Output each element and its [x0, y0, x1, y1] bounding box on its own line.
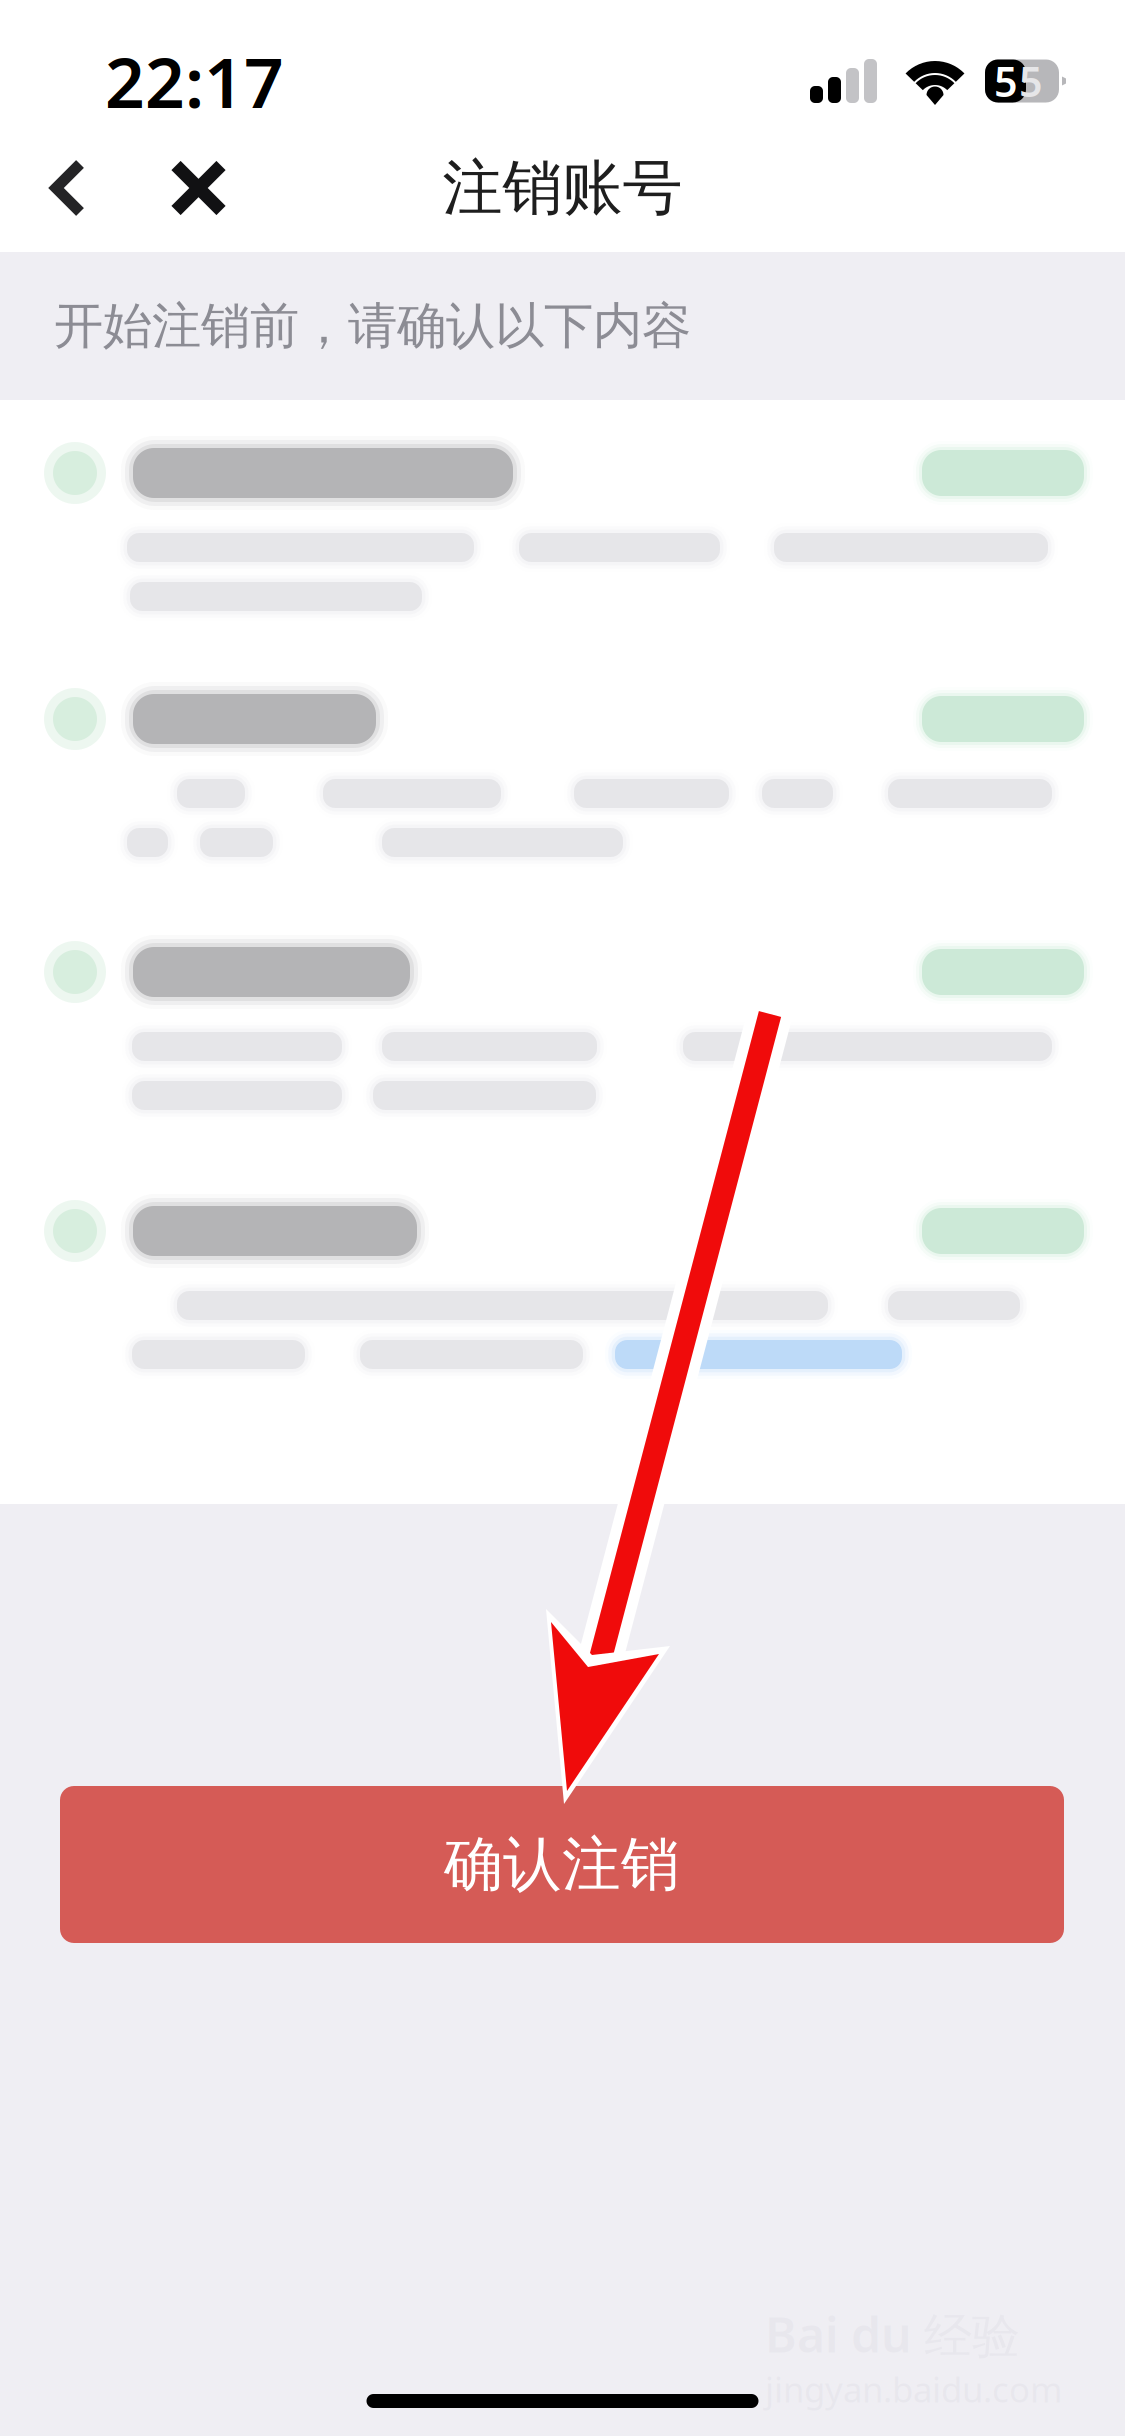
- button[interactable]: Back: [0, 136, 142, 240]
- staticText: 5: [1019, 54, 1043, 108]
- staticText: 5: [994, 54, 1018, 108]
- staticText: 确认注销: [444, 1828, 680, 1901]
- button[interactable]: Close: [142, 136, 244, 239]
- staticText: 注销账号: [442, 151, 682, 225]
- staticText: 开始注销前，请确认以下内容: [54, 296, 691, 356]
- button[interactable]: 确认注销: [60, 1786, 1064, 1943]
- staticText: 22:17: [105, 35, 284, 127]
